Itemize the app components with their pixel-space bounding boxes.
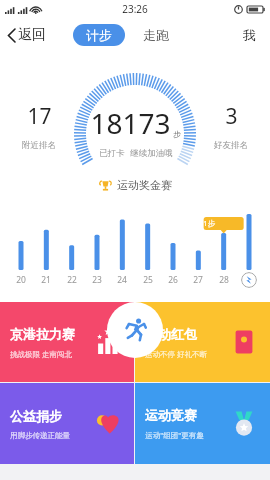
staticText: 25 bbox=[143, 274, 153, 286]
button[interactable]: 走跑 bbox=[139, 24, 173, 46]
button[interactable]: 运动竞赛 bbox=[135, 383, 270, 464]
staticText: 23 bbox=[92, 274, 102, 286]
staticText: 18173 bbox=[90, 104, 171, 142]
staticText: 27 bbox=[193, 274, 203, 286]
staticText: 21 bbox=[41, 274, 51, 286]
staticText: 3 bbox=[225, 102, 238, 131]
staticText: 运动红包 bbox=[145, 326, 197, 342]
staticText: 步 bbox=[173, 129, 181, 139]
staticText: 已打卡 bbox=[99, 148, 125, 159]
staticText: 运动竞赛 bbox=[145, 407, 197, 423]
staticText: ··· bbox=[32, 4, 39, 15]
staticText: 20 bbox=[16, 274, 26, 286]
button[interactable]: Start running bbox=[107, 302, 163, 358]
staticText: 用脚步传递正能量 bbox=[10, 431, 70, 440]
staticText: 28 bbox=[219, 274, 229, 286]
button[interactable]: 返回 bbox=[5, 22, 48, 48]
staticText: 24 bbox=[117, 274, 127, 286]
button[interactable]: 我 bbox=[239, 23, 260, 47]
staticText: 17 bbox=[27, 102, 52, 131]
staticText: 继续加油哦 bbox=[130, 148, 173, 159]
button[interactable]: 公益捐步 bbox=[0, 383, 134, 464]
staticText: 22 bbox=[67, 274, 77, 286]
staticText: 23:26 bbox=[122, 2, 148, 16]
button[interactable]: 3 bbox=[214, 102, 248, 151]
button[interactable]: 运动红包 bbox=[135, 302, 270, 382]
button[interactable]: 京港拉力赛 bbox=[0, 302, 134, 382]
button[interactable]: Today bbox=[241, 272, 257, 288]
staticText: 挑战极限 走南闯北 bbox=[10, 349, 72, 359]
staticText: 运动不停 好礼不断 bbox=[145, 349, 207, 359]
staticText: 计步 bbox=[86, 27, 112, 43]
button[interactable]: 计步 bbox=[73, 24, 125, 46]
staticText: 我 bbox=[243, 27, 256, 43]
button[interactable]: 运动奖金赛 bbox=[85, 174, 186, 196]
staticText: 运动"组团"更有趣 bbox=[145, 430, 204, 440]
staticText: 公益捐步 bbox=[10, 408, 62, 424]
staticText: 26 bbox=[168, 274, 178, 286]
button[interactable]: 17 bbox=[22, 102, 56, 151]
staticText: 10051步 bbox=[186, 218, 215, 228]
staticText: 京港拉力赛 bbox=[10, 326, 75, 342]
staticText: 好友排名 bbox=[214, 140, 248, 151]
staticText: 运动奖金赛 bbox=[117, 178, 172, 192]
staticText: 返回 bbox=[18, 26, 46, 44]
staticText: 走跑 bbox=[143, 27, 169, 43]
staticText: 附近排名 bbox=[22, 140, 56, 151]
